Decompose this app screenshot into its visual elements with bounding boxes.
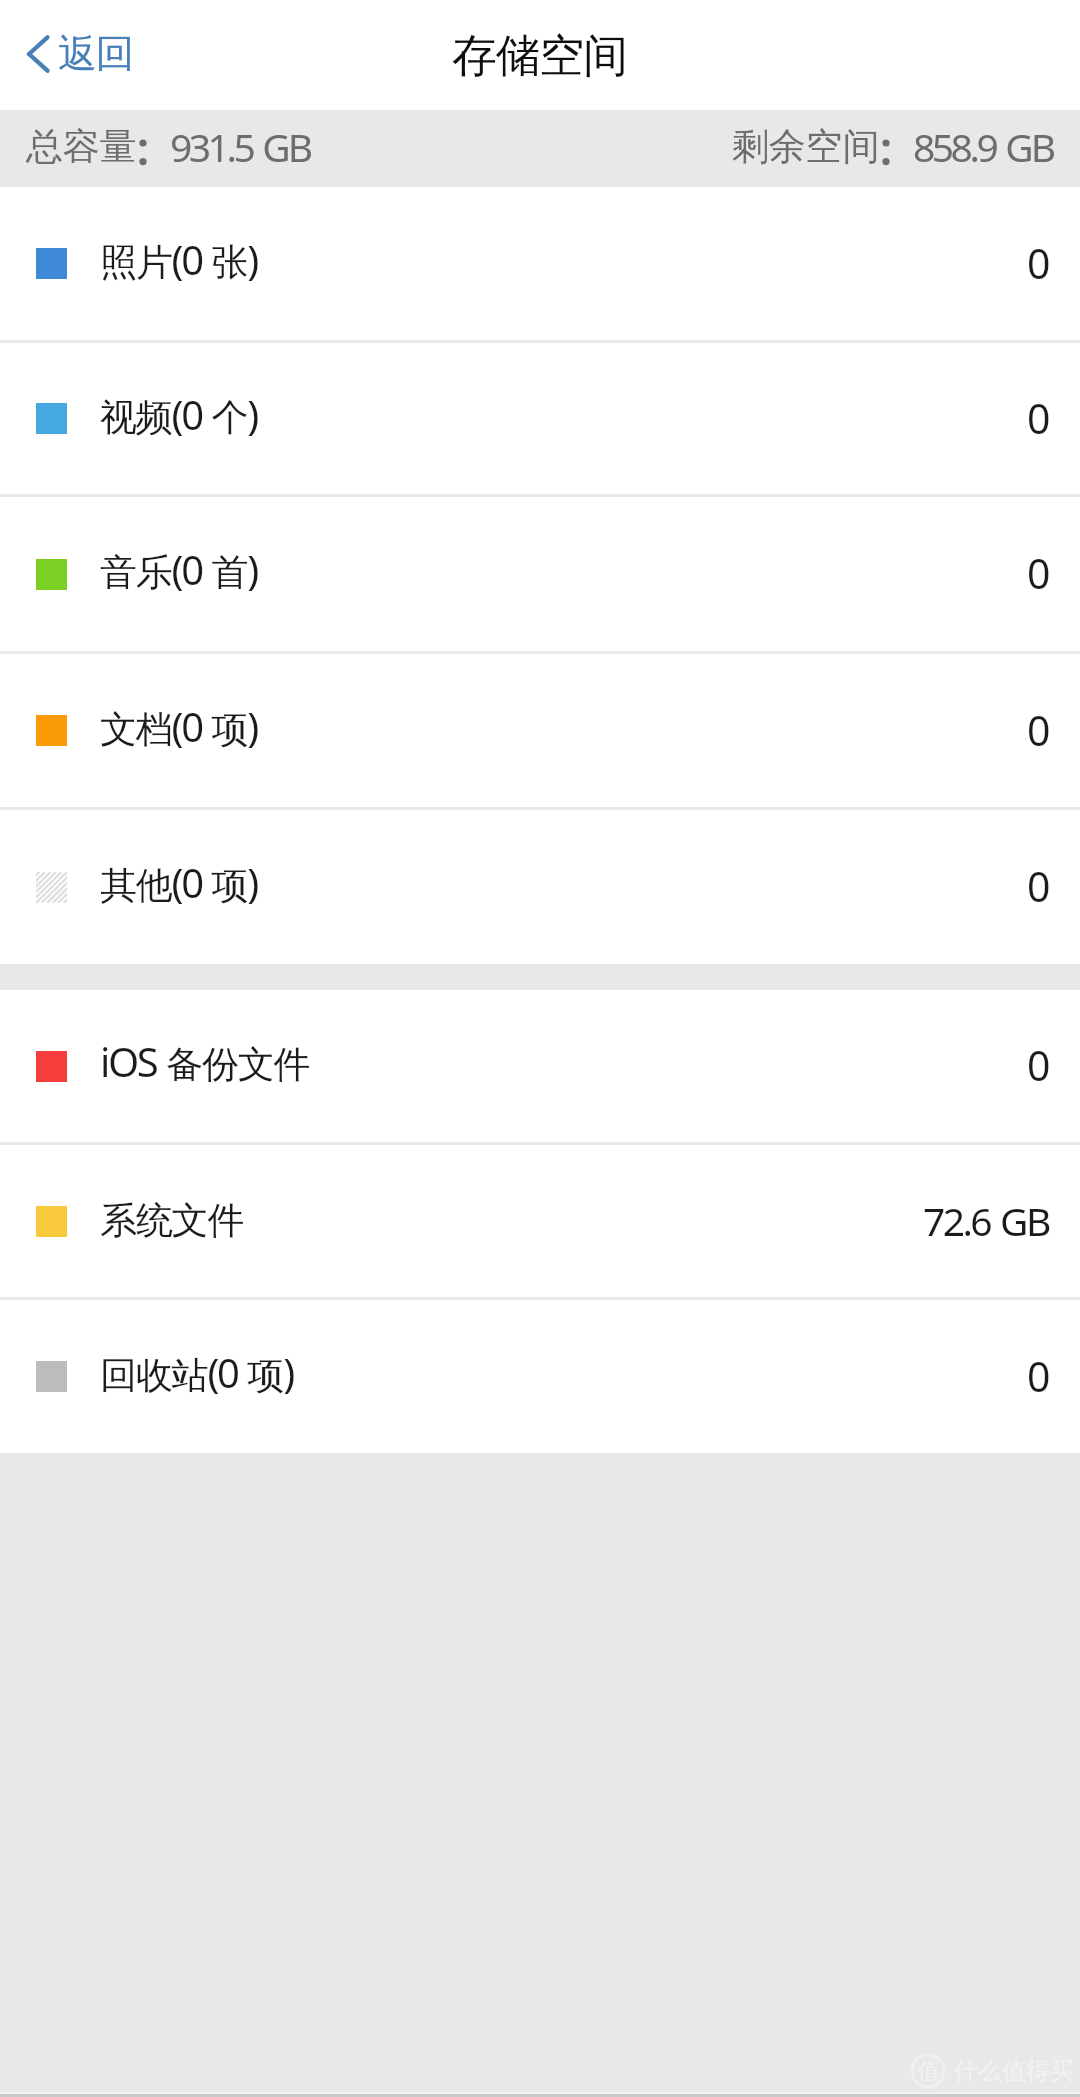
staticText: 0 <box>1027 235 1049 291</box>
staticText: 0 <box>1027 1348 1049 1404</box>
button[interactable]: 文档(0 项) <box>0 654 1080 807</box>
staticText: 文档(0 项) <box>100 699 257 753</box>
button[interactable]: Other files <box>0 810 1080 964</box>
staticText: 值 <box>917 2057 940 2086</box>
staticText: 0 <box>1027 858 1049 914</box>
staticText: 858.9 GB <box>913 120 1054 173</box>
staticText: 存储空间 <box>452 28 628 85</box>
staticText: 返回 <box>59 29 134 78</box>
staticText: 回收站(0 项) <box>100 1345 293 1399</box>
staticText: 0 <box>1027 545 1049 601</box>
staticText: 72.6 GB <box>923 1194 1049 1247</box>
staticText: 照片(0 张) <box>100 232 257 286</box>
other: Other files <box>36 872 67 903</box>
staticText: 0 <box>1027 702 1049 758</box>
staticText: 音乐(0 首) <box>100 542 257 596</box>
staticText: 0 <box>1027 390 1049 446</box>
staticText: 视频(0 个) <box>100 387 257 441</box>
button[interactable]: 回收站(0 项) <box>0 1300 1080 1453</box>
staticText: 系统文件 <box>100 1197 244 1244</box>
button[interactable]: iOS 备份文件 <box>0 990 1080 1142</box>
button[interactable]: 视频(0 个) <box>0 343 1080 494</box>
staticText: 0 <box>1027 1037 1049 1093</box>
staticText: 总容量 <box>26 123 137 170</box>
staticText: 什么值得买 <box>954 2056 1074 2086</box>
button[interactable]: 音乐(0 首) <box>0 497 1080 651</box>
staticText: iOS 备份文件 <box>100 1034 310 1088</box>
staticText: 剩余空间 <box>732 123 880 170</box>
button[interactable]: 照片(0 张) <box>0 187 1080 340</box>
staticText: 931.5 GB <box>170 120 311 173</box>
staticText: 其他(0 项) <box>100 855 257 909</box>
button[interactable]: 系统文件 <box>0 1145 1080 1297</box>
button[interactable]: 返回 Back <box>15 19 146 92</box>
